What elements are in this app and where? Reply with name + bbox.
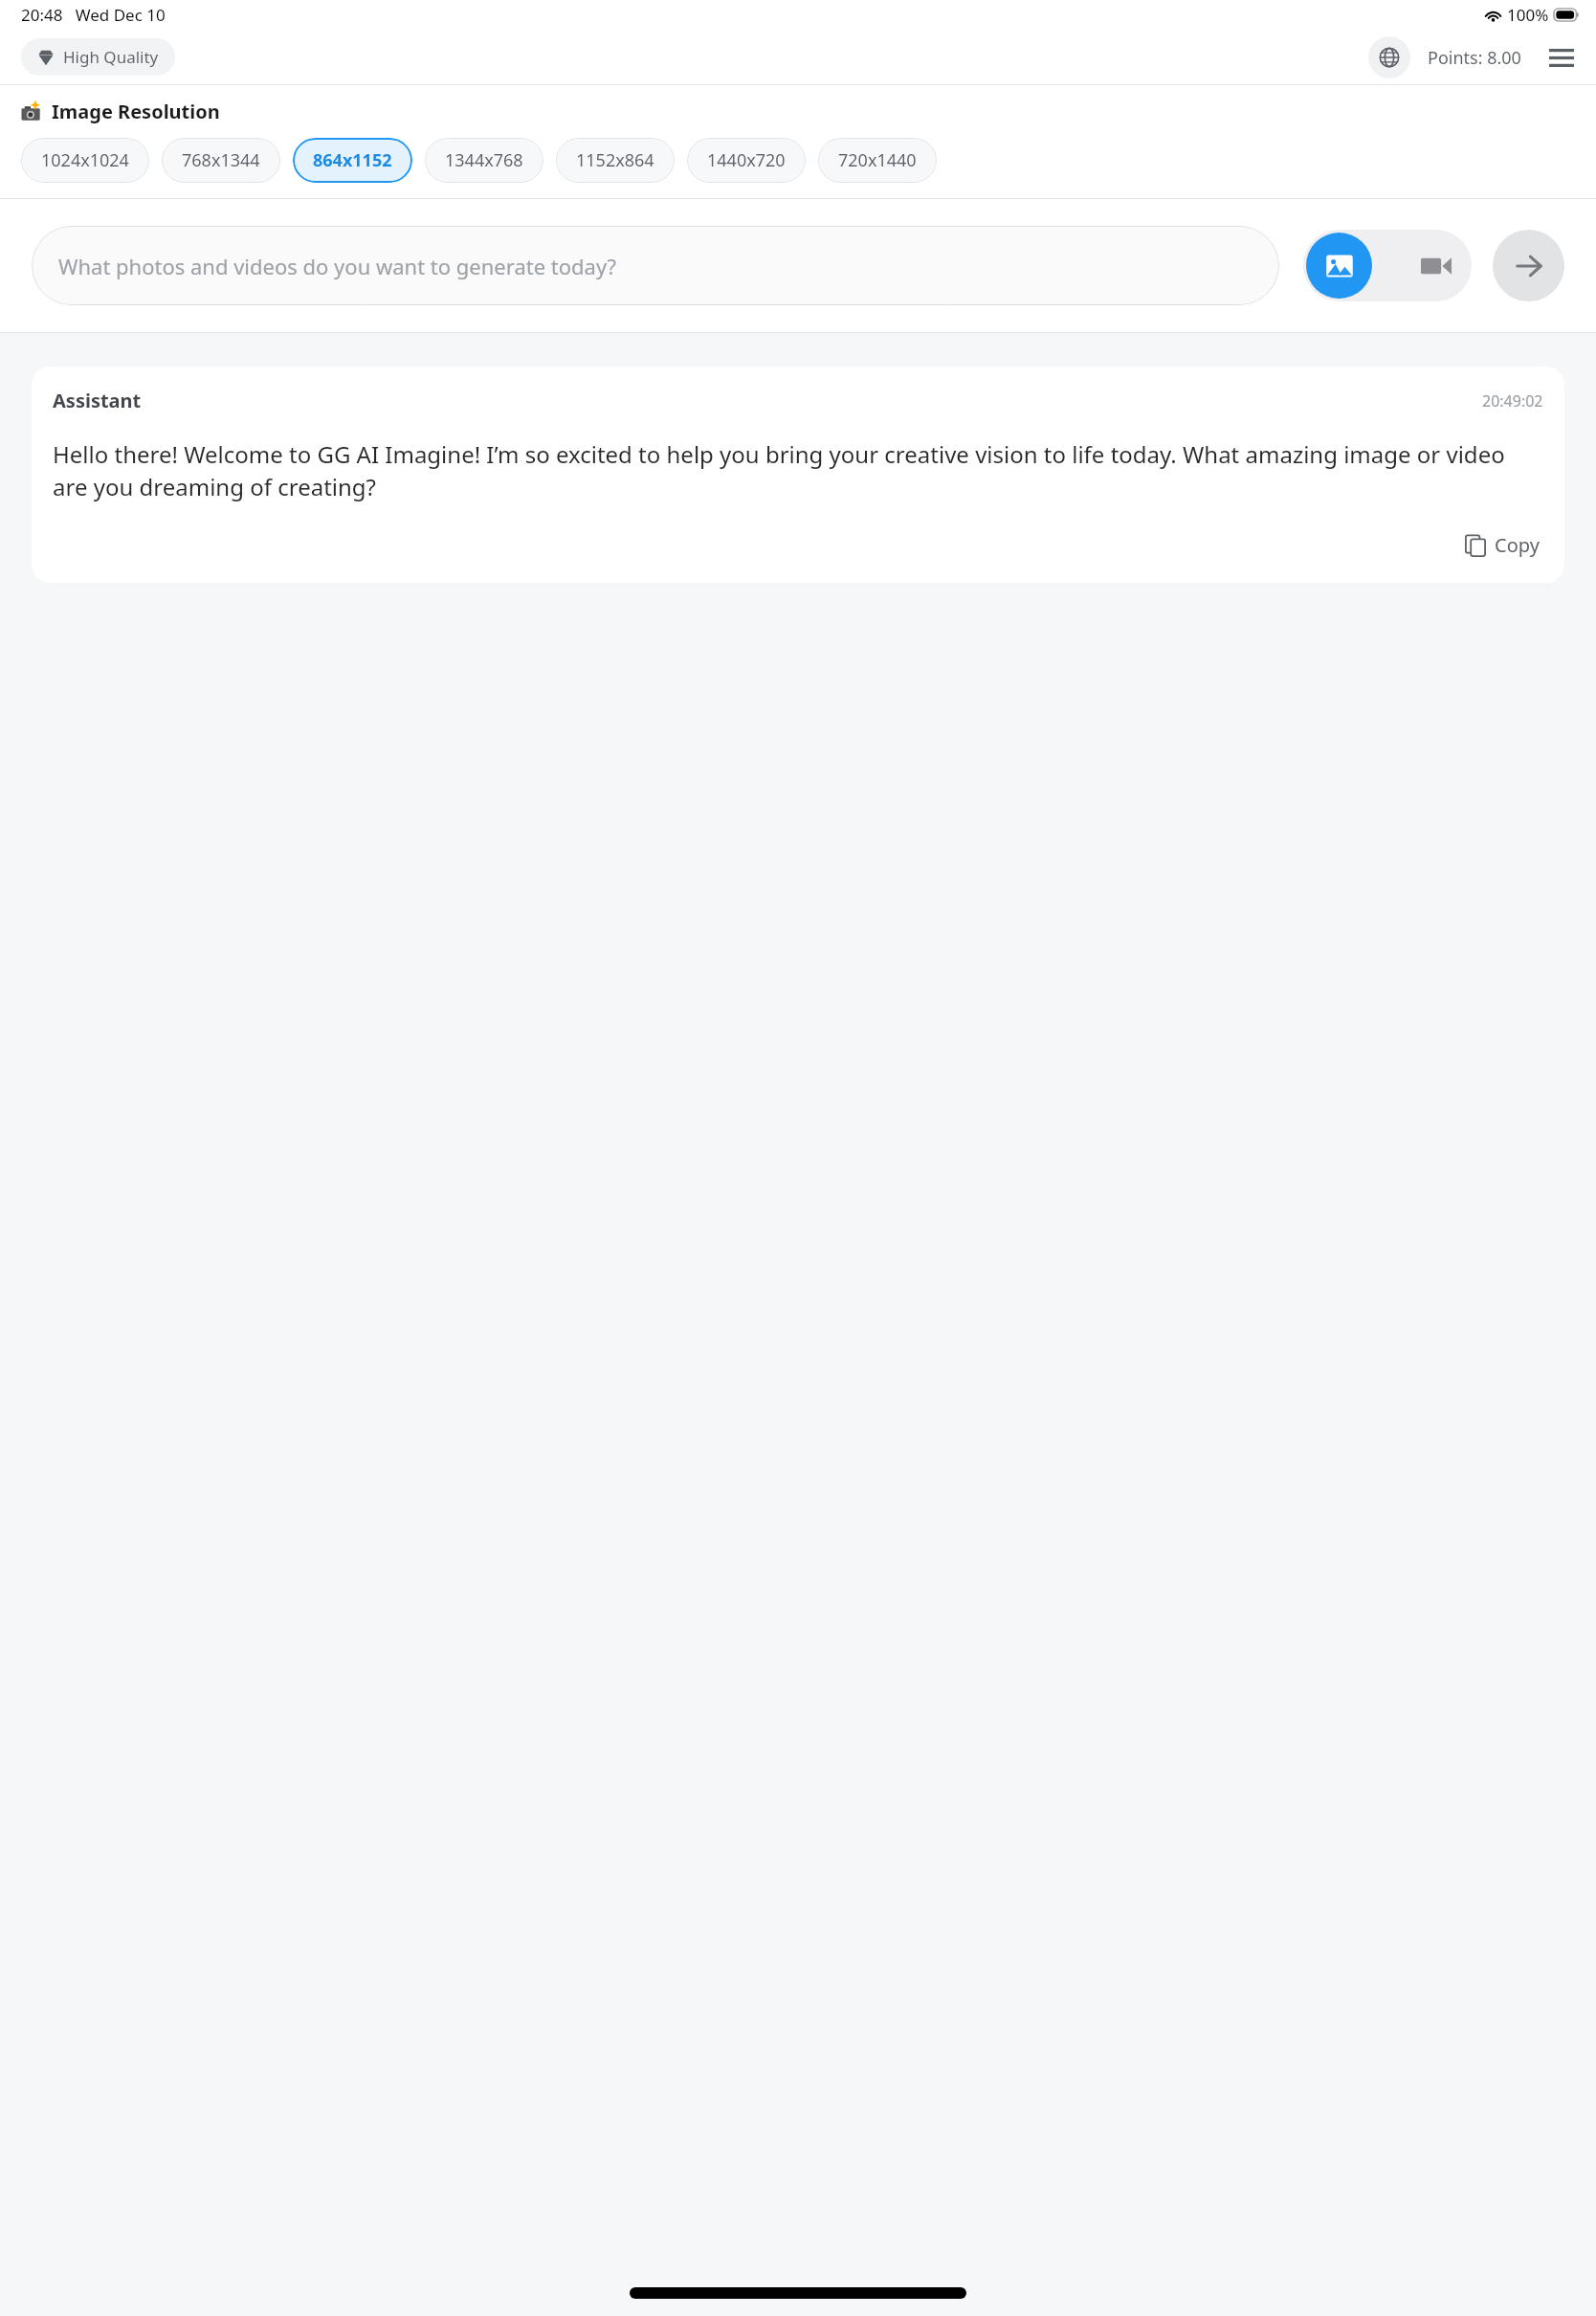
- button[interactable]: Menu: [1542, 38, 1581, 77]
- button[interactable]: High Quality: [21, 38, 175, 76]
- staticText: 1152x864: [576, 148, 654, 172]
- staticText: 20:48 Wed Dec 10: [21, 4, 166, 26]
- staticText: 1440x720: [707, 148, 786, 172]
- staticText: Copy: [1495, 532, 1540, 558]
- button[interactable]: Image mode: [1306, 233, 1372, 299]
- button[interactable]: What photos and videos do you want to ge…: [32, 226, 1279, 305]
- staticText: What photos and videos do you want to ge…: [58, 252, 617, 280]
- staticText: 864x1152: [313, 148, 392, 172]
- button[interactable]: 864x1152: [293, 138, 412, 183]
- staticText: Image Resolution: [52, 99, 220, 124]
- staticText: 1344x768: [445, 148, 523, 172]
- button[interactable]: Language: [1368, 36, 1410, 78]
- staticText: Hello there! Welcome to GG AI Imagine! I…: [53, 438, 1543, 503]
- button[interactable]: 1024x1024: [21, 138, 149, 183]
- staticText: 100%: [1507, 4, 1549, 26]
- staticText: 20:49:02: [1482, 390, 1543, 412]
- button[interactable]: 720x1440: [818, 138, 937, 183]
- button[interactable]: Assistant: [32, 367, 1564, 583]
- button[interactable]: 1344x768: [425, 138, 543, 183]
- staticText: High Quality: [63, 46, 159, 68]
- button[interactable]: 1152x864: [556, 138, 675, 183]
- button[interactable]: Points: 8.00: [1428, 46, 1521, 70]
- button[interactable]: 768x1344: [162, 138, 280, 183]
- button[interactable]: Copy: [1460, 528, 1543, 562]
- staticText: Assistant: [53, 388, 142, 413]
- staticText: 720x1440: [838, 148, 917, 172]
- button[interactable]: Video mode: [1403, 233, 1469, 299]
- button[interactable]: Send: [1493, 230, 1564, 301]
- button[interactable]: 1440x720: [687, 138, 806, 183]
- staticText: 768x1344: [182, 148, 260, 172]
- staticText: 1024x1024: [41, 148, 129, 172]
